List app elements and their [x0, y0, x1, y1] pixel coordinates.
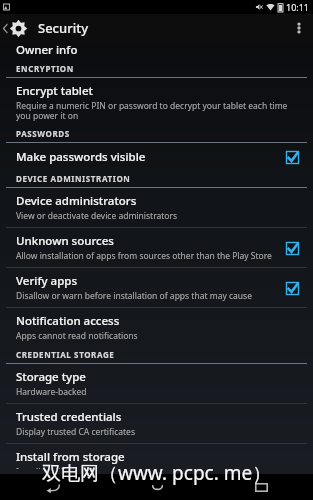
staticText: DEVICE ADMINISTRATION [16, 173, 131, 184]
staticText: Storage type [16, 369, 86, 385]
button[interactable]: More options [285, 14, 313, 42]
staticText: Encrypt tablet [16, 83, 93, 99]
staticText: Owner info [16, 42, 78, 55]
staticText: Verify apps [16, 273, 78, 289]
button[interactable]: Install from storage [0, 444, 313, 474]
staticText: Unknown sources [16, 233, 114, 249]
staticText: Security [38, 19, 88, 37]
button[interactable]: Make passwords visible [0, 143, 313, 171]
staticText: 双电网（www. pcpc. me） [42, 460, 272, 486]
staticText: 10:11 [286, 1, 310, 13]
staticText: CREDENTIAL STORAGE [16, 349, 115, 360]
button[interactable]: Toggle [283, 148, 301, 166]
staticText: Require a numeric PIN or password to dec… [16, 100, 301, 121]
button[interactable]: Device administrators [0, 188, 313, 227]
button[interactable]: Toggle [283, 279, 301, 297]
button[interactable]: Navigate up [0, 14, 32, 42]
button[interactable]: Toggle [283, 239, 301, 257]
staticText: Trusted credentials [16, 409, 122, 425]
staticText: Display trusted CA certificates [16, 426, 135, 438]
staticText: Hardware-backed [16, 386, 87, 398]
staticText: Install certificates from storage [16, 466, 141, 469]
button[interactable]: Unknown sources [0, 228, 313, 267]
button[interactable]: Home [105, 474, 209, 500]
button[interactable]: Back [0, 474, 105, 500]
button[interactable]: Trusted credentials [0, 404, 313, 443]
staticText: Make passwords visible [16, 149, 146, 165]
staticText: Allow installation of apps from sources … [16, 250, 272, 262]
staticText: Disallow or warn before installation of … [16, 290, 275, 302]
button[interactable]: Storage type [0, 364, 313, 403]
button[interactable]: Notification access [0, 308, 313, 347]
staticText: Notification access [16, 313, 120, 329]
staticText: Device administrators [16, 193, 137, 209]
staticText: ENCRYPTION [16, 63, 74, 74]
staticText: PASSWORDS [16, 128, 70, 139]
button[interactable]: Encrypt tablet [0, 78, 313, 126]
button[interactable]: Owner info [0, 42, 313, 55]
staticText: Install from storage [16, 449, 125, 465]
button[interactable]: Verify apps [0, 268, 313, 307]
staticText: View or deactivate device administrators [16, 210, 178, 222]
button[interactable]: Recent apps [209, 474, 313, 500]
staticText: Apps cannot read notifications [16, 330, 138, 342]
